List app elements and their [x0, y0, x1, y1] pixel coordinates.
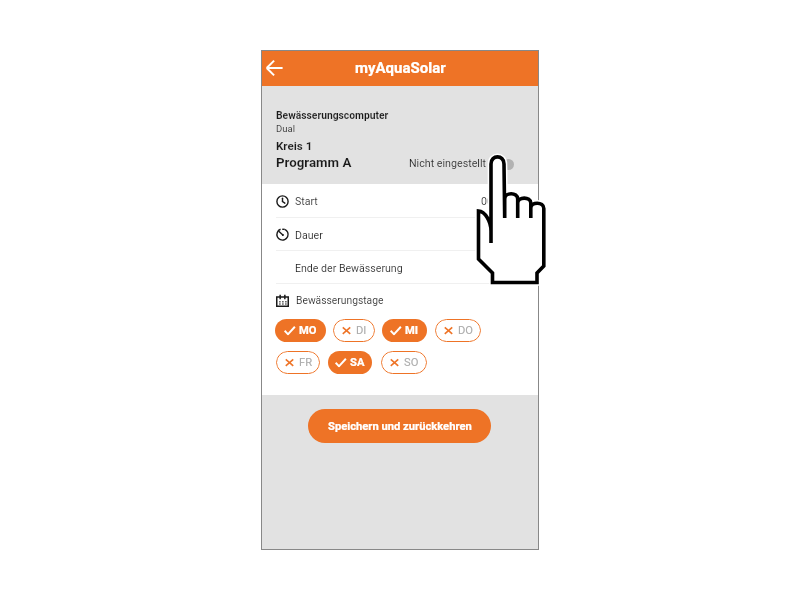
staticText: Dauer	[295, 229, 323, 241]
staticText: Nicht eingestellt	[409, 157, 487, 170]
staticText: 0:00	[487, 229, 508, 241]
button[interactable]: Start	[261, 184, 539, 218]
button[interactable]: FR	[276, 351, 320, 374]
button[interactable]: Zurück	[260, 54, 288, 82]
button[interactable]: MO	[275, 319, 326, 342]
button[interactable]: DO	[435, 319, 481, 342]
button[interactable]: SO	[381, 351, 427, 374]
staticText: Ende der Bewässerung	[295, 262, 403, 274]
button[interactable]: Speichern und zurückkehren	[308, 409, 491, 443]
staticText: MI	[405, 324, 419, 337]
staticText: DI	[356, 324, 367, 337]
button[interactable]: Ende der Bewässerung	[261, 251, 539, 284]
staticText: SA	[350, 356, 365, 369]
staticText: Programm A	[276, 155, 352, 171]
staticText: Dual	[276, 123, 295, 134]
button[interactable]: Dauer	[261, 218, 539, 251]
staticText: FR	[299, 356, 313, 369]
button[interactable]: SA	[328, 351, 372, 374]
staticText: Speichern und zurückkehren	[328, 420, 472, 433]
staticText: myAquaSolar	[355, 59, 446, 77]
staticText: Kreis 1	[276, 139, 313, 153]
button[interactable]: MI	[382, 319, 427, 342]
staticText: DO	[458, 324, 474, 337]
staticText: Start	[295, 195, 318, 207]
staticText: Bewässerungstage	[296, 294, 384, 306]
staticText: 00:00	[481, 195, 508, 207]
button[interactable]: DI	[333, 319, 375, 342]
staticText: Bewässerungscomputer	[276, 109, 389, 121]
staticText: MO	[299, 324, 317, 337]
staticText: SO	[404, 356, 419, 369]
button[interactable]: Programm aktivieren	[501, 156, 527, 172]
